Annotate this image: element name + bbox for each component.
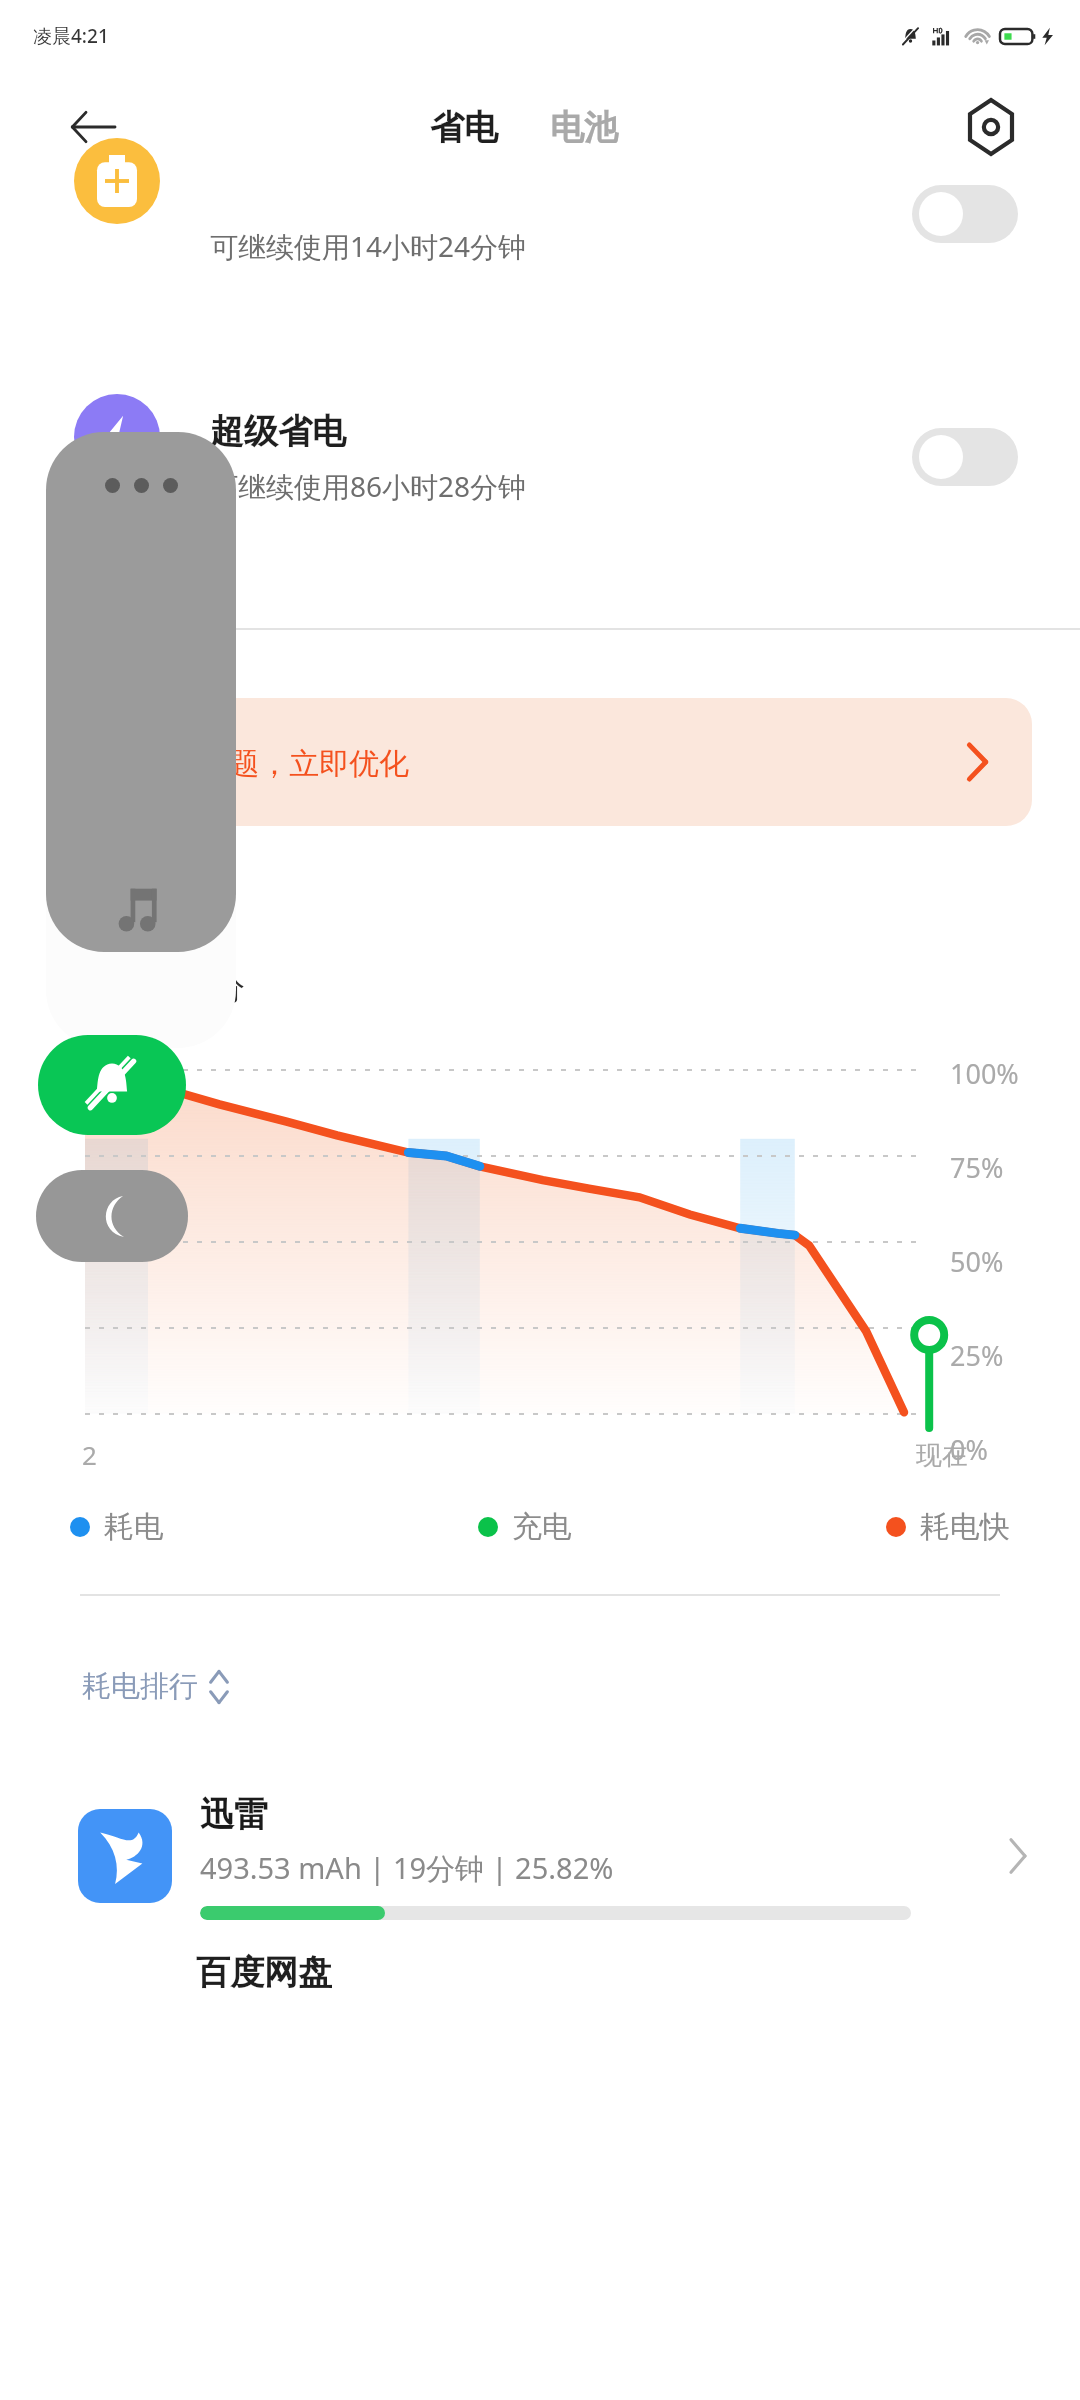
button[interactable]: Toggle power saver [912, 185, 1018, 243]
staticText: 电池 [550, 106, 618, 149]
staticText: 耗电排行 [82, 1668, 198, 1705]
staticText: 凌晨4:21 [33, 23, 109, 49]
staticText: 100% [950, 1055, 1058, 1092]
button[interactable]: 耗电排行 [78, 1662, 234, 1711]
button[interactable]: Settings [958, 94, 1024, 160]
staticText: 分 [213, 968, 245, 1008]
staticText: 75% [950, 1149, 1058, 1186]
button[interactable]: Night mode [36, 1170, 188, 1262]
staticText: 1个耗电问题，立即优化 [92, 742, 410, 783]
staticText: 25% [950, 1337, 1058, 1374]
button[interactable]: 1个耗电问题，立即优化 [48, 698, 1032, 826]
staticText: 50% [950, 1243, 1058, 1280]
staticText: 省电 [430, 106, 498, 149]
button[interactable]: 省电 [418, 98, 510, 157]
staticText: 充电 [512, 1508, 572, 1546]
button[interactable]: Back [62, 96, 124, 158]
staticText: 迅雷 [200, 1793, 268, 1836]
button[interactable]: Floating panel [46, 432, 236, 952]
button[interactable]: Do not disturb [38, 1035, 186, 1135]
staticText: 可继续使用14小时24分钟 [210, 227, 527, 265]
staticText: 493.53 mAh | 19分钟 | 25.82% [200, 1848, 614, 1888]
staticText: 超级省电 [210, 410, 346, 453]
staticText: 0% [950, 1431, 1058, 1468]
button[interactable]: 迅雷 [0, 1761, 1080, 1951]
staticText: 可继续使用86小时28分钟 [210, 467, 527, 505]
staticText: 现在 [916, 1439, 968, 1472]
staticText: 2 [82, 1437, 97, 1472]
button[interactable]: Toggle ultra power saver [912, 428, 1018, 486]
staticText: 耗电快 [920, 1508, 1010, 1546]
staticText: 40 [136, 924, 207, 1008]
staticText: 耗电 [104, 1508, 164, 1546]
staticText: 百度网盘 [196, 1951, 332, 1991]
button[interactable]: 电池 [538, 98, 630, 157]
staticText: 长 [150, 882, 178, 917]
